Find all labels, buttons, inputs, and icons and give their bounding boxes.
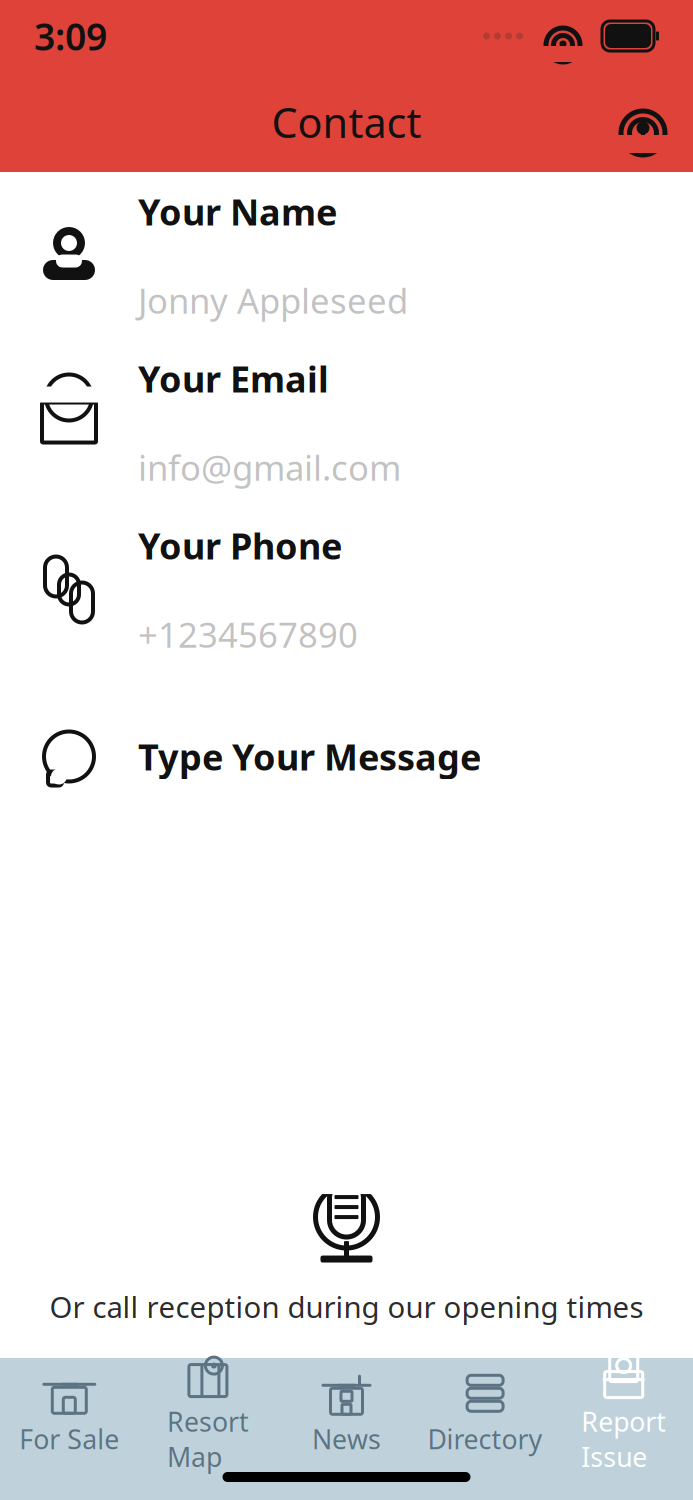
button[interactable]: Call reception	[0, 1177, 693, 1326]
button[interactable]: Report Issue	[554, 1368, 693, 1460]
staticText: Your Phone	[138, 522, 342, 569]
staticText: Type Your Message	[138, 733, 481, 780]
staticText: Resort Map	[167, 1404, 249, 1474]
button[interactable]: News	[277, 1368, 416, 1460]
staticText: For Sale	[19, 1421, 119, 1457]
staticText: News	[312, 1421, 381, 1457]
button[interactable]: Resort Map	[139, 1368, 277, 1460]
staticText: Your Email	[138, 355, 329, 402]
button[interactable]: Your Phone	[0, 506, 693, 673]
staticText: 3:09	[34, 11, 107, 61]
staticText: Your Name	[138, 188, 337, 235]
staticText: Directory	[428, 1421, 543, 1457]
button[interactable]: For Sale	[0, 1368, 139, 1460]
button[interactable]: Broadcast	[611, 90, 675, 154]
button[interactable]: Type Your Message	[0, 673, 693, 840]
button[interactable]: Your Email	[0, 339, 693, 506]
button[interactable]: Directory	[416, 1368, 554, 1460]
button[interactable]: Your Name	[0, 172, 693, 339]
staticText: Contact	[271, 95, 421, 149]
staticText: Report Issue	[581, 1404, 666, 1474]
staticText: Or call reception during our opening tim…	[49, 1287, 643, 1326]
staticText: +1234567890	[138, 611, 358, 657]
staticText: info@gmail.com	[138, 444, 401, 490]
staticText: Jonny Appleseed	[138, 277, 408, 323]
